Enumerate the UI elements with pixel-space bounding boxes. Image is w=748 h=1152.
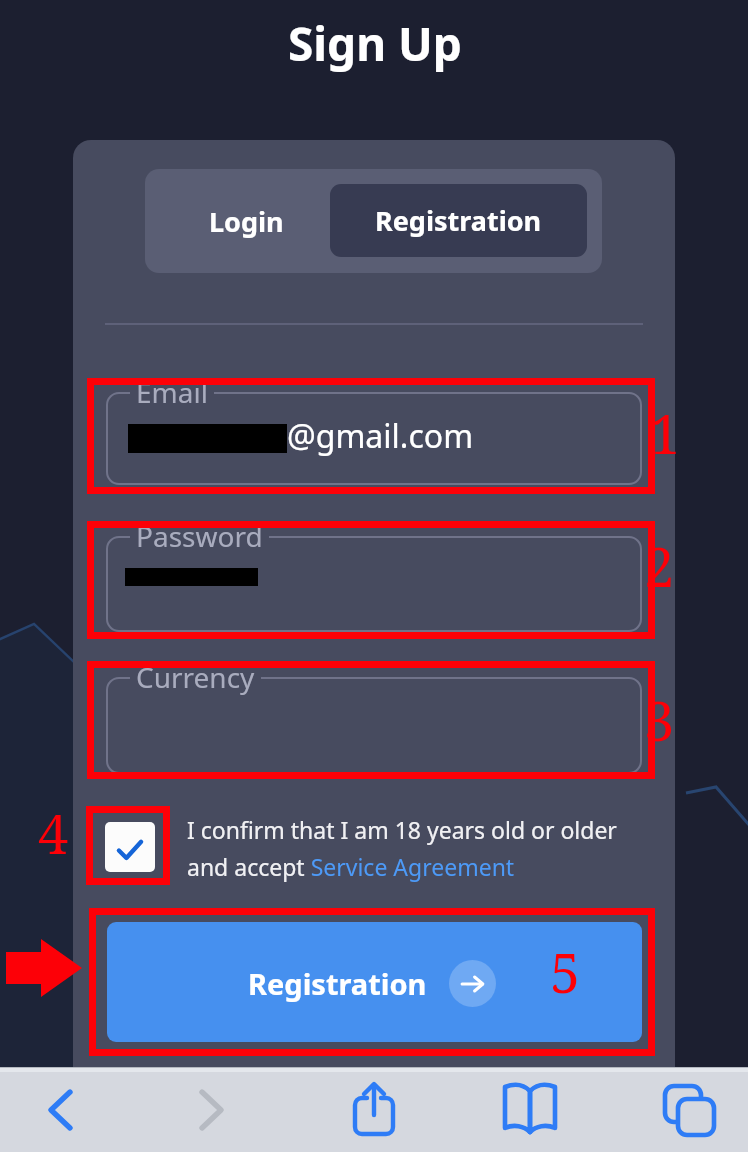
button[interactable]: and accept Service Agreement xyxy=(187,851,515,882)
button[interactable]: Login xyxy=(154,169,339,273)
button[interactable]: Bookmarks xyxy=(481,1067,577,1152)
button[interactable]: Back xyxy=(12,1067,108,1152)
staticText: Registration xyxy=(248,964,427,1003)
button[interactable]: Forward xyxy=(164,1067,260,1152)
staticText: 2 xyxy=(644,529,675,603)
staticText: @gmail.com xyxy=(287,414,474,458)
staticText: 1 xyxy=(650,396,681,470)
button[interactable]: Confirm age checkbox xyxy=(105,822,155,872)
staticText: Password xyxy=(136,517,263,555)
button[interactable]: Tabs xyxy=(641,1067,737,1152)
staticText: 4 xyxy=(38,796,69,870)
staticText: Login xyxy=(209,203,284,240)
staticText: 3 xyxy=(644,683,675,757)
staticText: Sign Up xyxy=(288,12,462,75)
staticText: Registration xyxy=(375,202,542,239)
button[interactable]: @gmail.com xyxy=(106,392,642,485)
button[interactable]: Registration xyxy=(330,184,587,257)
staticText: I confirm that I am 18 years old or olde… xyxy=(187,814,617,845)
staticText: Currency xyxy=(136,658,255,696)
staticText: 5 xyxy=(550,935,581,1009)
button[interactable]: Share xyxy=(325,1067,421,1152)
button[interactable] xyxy=(106,536,642,632)
button[interactable] xyxy=(106,677,642,774)
button[interactable]: Registration xyxy=(107,922,642,1042)
staticText: Email xyxy=(136,373,208,411)
